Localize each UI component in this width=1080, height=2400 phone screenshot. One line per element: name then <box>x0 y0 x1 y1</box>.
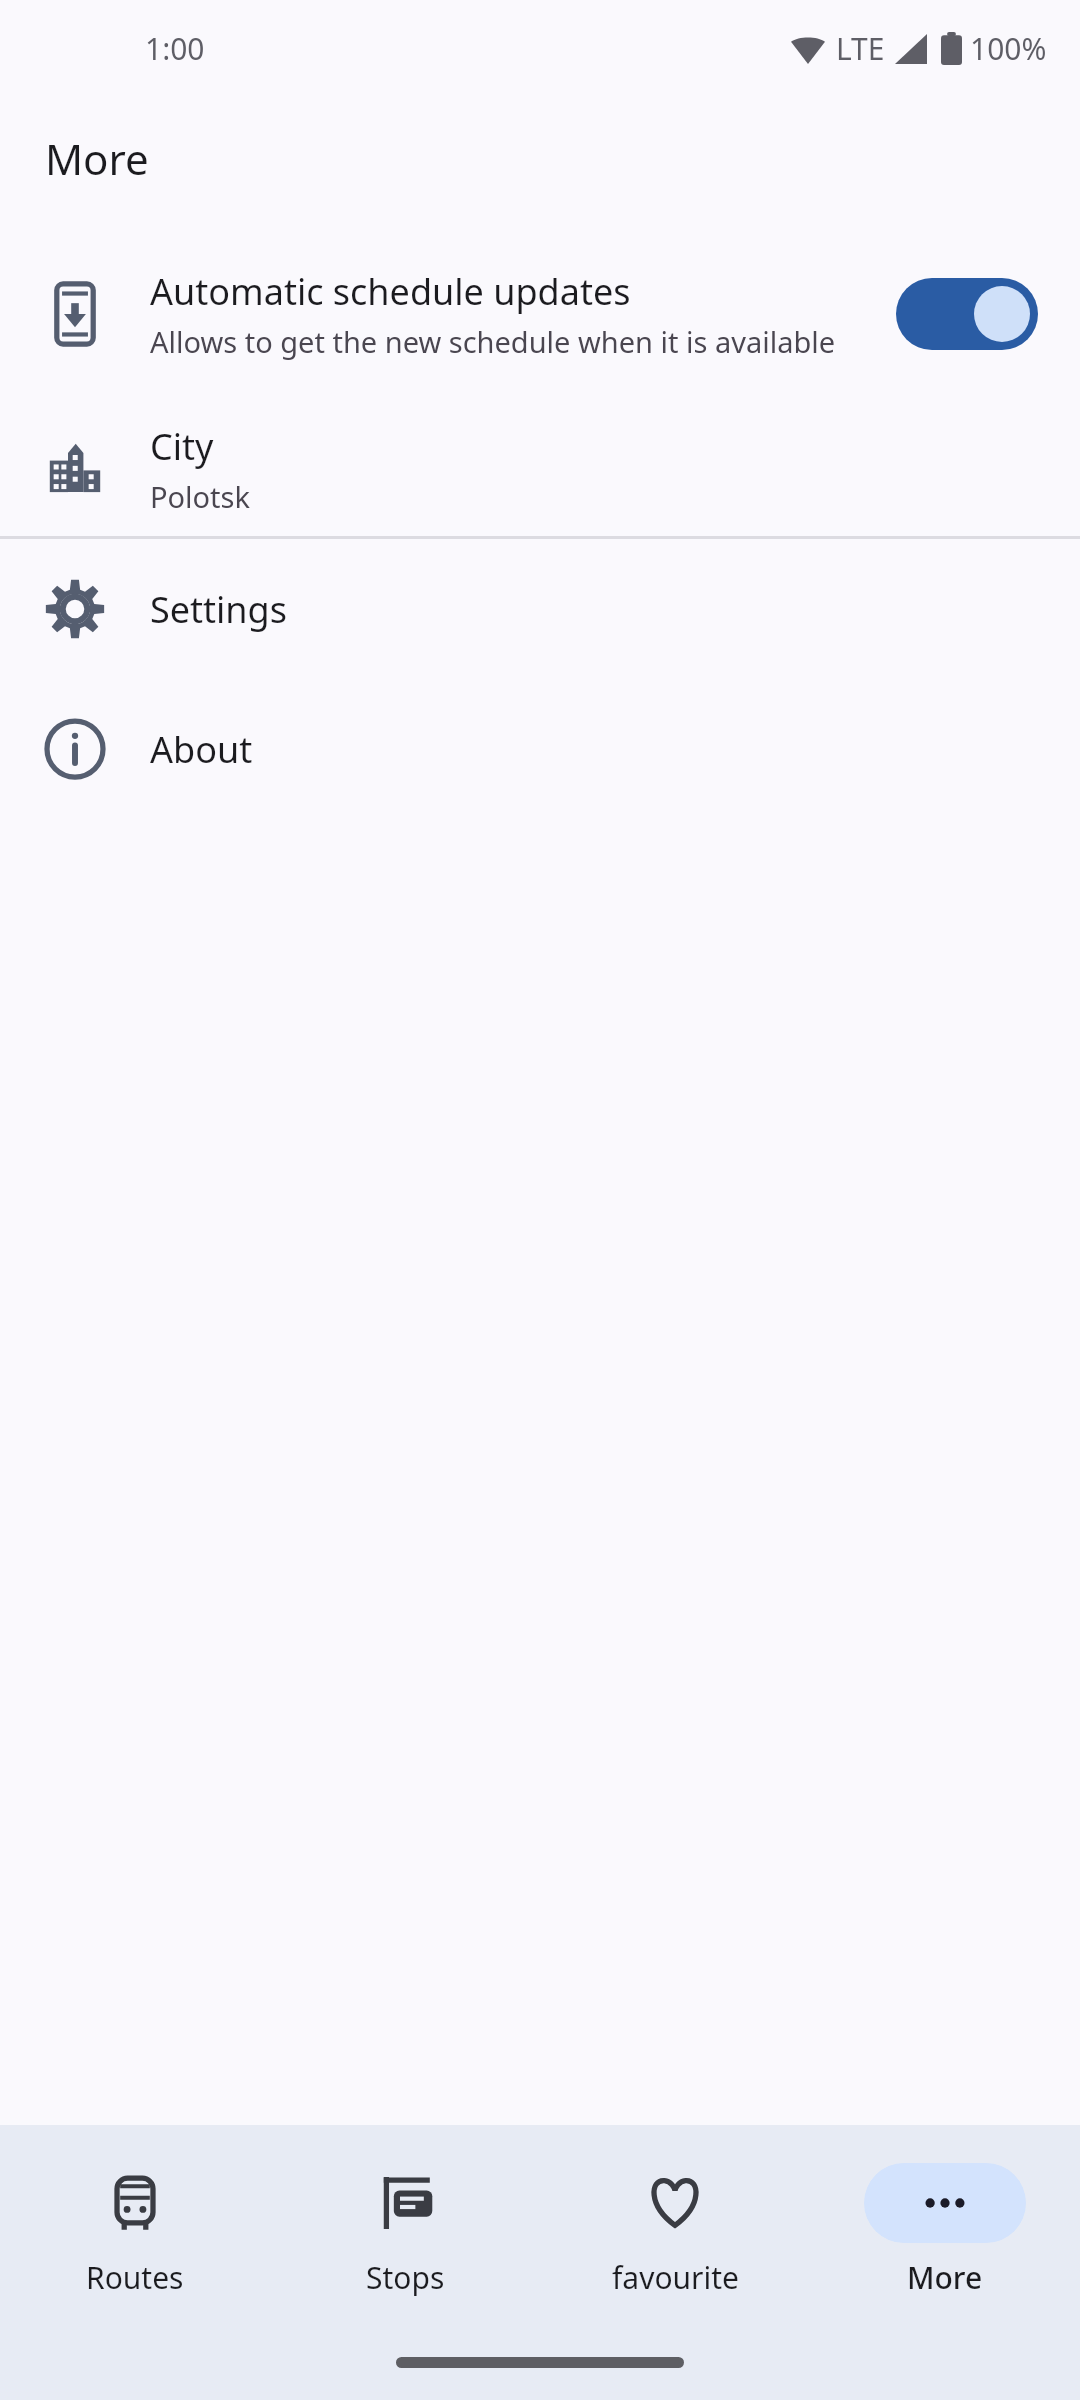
button[interactable]: Routes <box>0 2125 270 2325</box>
button[interactable]: Settings <box>0 539 1080 679</box>
staticText: Settings <box>150 585 287 634</box>
staticText: Allows to get the new schedule when it i… <box>150 322 836 361</box>
button[interactable]: Stops <box>270 2125 540 2325</box>
staticText: LTE <box>836 28 885 69</box>
button[interactable]: More <box>810 2125 1080 2325</box>
button[interactable]: favourite <box>540 2125 810 2325</box>
staticText: Polotsk <box>150 477 250 516</box>
staticText: Routes <box>86 2257 184 2298</box>
staticText: More <box>907 2257 983 2298</box>
button[interactable]: City <box>0 406 1080 531</box>
staticText: More <box>45 130 149 187</box>
staticText: City <box>150 422 214 471</box>
staticText: Stops <box>366 2257 445 2298</box>
staticText: 100% <box>970 28 1047 69</box>
button[interactable]: Automatic schedule updates <box>0 221 1080 406</box>
button[interactable]: Automatic schedule updates toggle <box>896 278 1038 350</box>
button[interactable]: About <box>0 679 1080 819</box>
staticText: favourite <box>612 2257 739 2298</box>
staticText: About <box>150 725 253 774</box>
staticText: 1:00 <box>145 28 205 69</box>
staticText: Automatic schedule updates <box>150 267 631 316</box>
